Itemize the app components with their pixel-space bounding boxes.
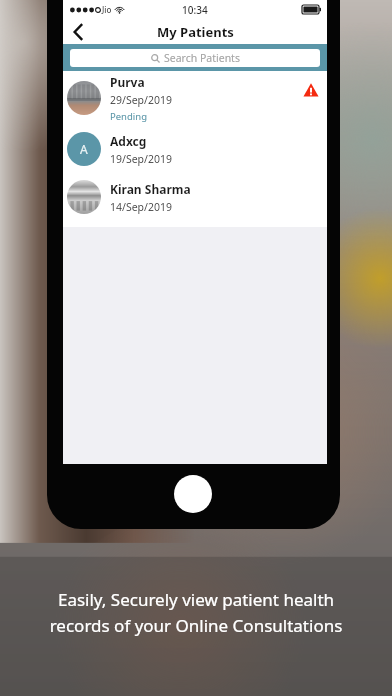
staticText: Pending: [110, 110, 147, 123]
staticText: Easily, Securely view patient health rec…: [0, 588, 392, 637]
staticText: 19/Sep/2019: [110, 152, 172, 166]
staticText: A: [80, 141, 88, 157]
staticText: 29/Sep/2019: [110, 93, 172, 107]
button[interactable]: Search Patients: [70, 49, 320, 67]
staticText: My Patients: [157, 23, 234, 41]
button[interactable]: Alert: [303, 82, 319, 98]
staticText: 14/Sep/2019: [110, 200, 172, 214]
button[interactable]: A: [63, 125, 327, 173]
staticText: Jio: [102, 4, 112, 15]
button[interactable]: Purva: [63, 71, 327, 125]
staticText: Kiran Sharma: [110, 181, 191, 197]
staticText: Purva: [110, 74, 145, 90]
staticText: 10:34: [182, 3, 208, 17]
staticText: Adxcg: [110, 133, 147, 149]
staticText: Search Patients: [164, 51, 240, 65]
button[interactable]: Kiran Sharma: [63, 173, 327, 221]
button[interactable]: Back: [63, 19, 93, 44]
